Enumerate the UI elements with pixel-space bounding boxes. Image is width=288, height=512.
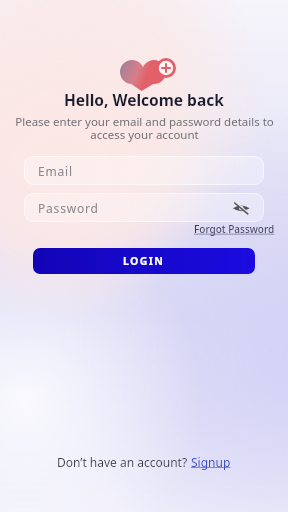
button[interactable]: Email [24, 156, 264, 185]
staticText: Don’t have an account? [57, 454, 191, 470]
button[interactable]: Forgot Password [194, 222, 275, 236]
staticText: Email [38, 163, 73, 179]
staticText: Signup [191, 454, 231, 470]
staticText: Password [38, 200, 99, 216]
staticText: LOGIN [123, 254, 165, 268]
button[interactable]: LOGIN [33, 248, 255, 274]
button[interactable]: Don’t have an account? [57, 454, 231, 470]
button[interactable]: Password [24, 193, 264, 222]
staticText: Hello, Welcome back [64, 89, 224, 110]
staticText: Please enter your email and password det… [15, 114, 274, 142]
